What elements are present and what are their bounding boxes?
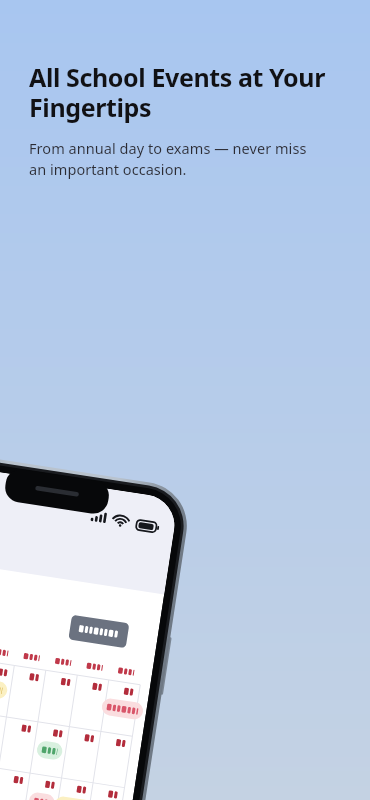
staticText: All School Events at Your Fingertips (29, 60, 329, 125)
staticText: From annual day to exams — never miss an… (29, 138, 321, 180)
button[interactable]: Calendar app preview (0, 470, 160, 800)
